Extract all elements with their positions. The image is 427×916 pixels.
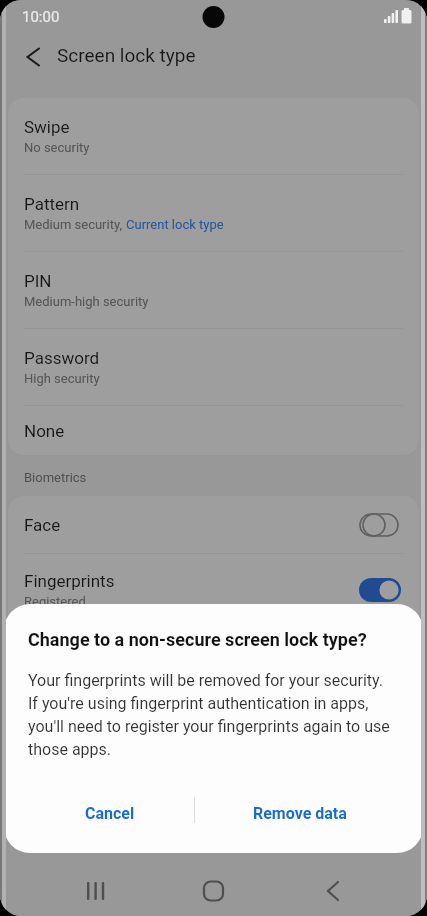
staticText: Fingerprints <box>24 571 115 591</box>
button[interactable]: Password <box>8 329 419 405</box>
staticText: Your fingerprints will be removed for yo… <box>28 671 390 759</box>
staticText: Change to a non-secure screen lock type? <box>28 629 367 650</box>
staticText: Screen lock type <box>57 44 196 66</box>
staticText: None <box>24 421 65 441</box>
staticText: PIN <box>24 271 52 291</box>
button[interactable] <box>185 862 241 912</box>
button[interactable]: Remove data <box>230 791 370 835</box>
button[interactable]: Cancel <box>52 791 168 835</box>
staticText: No security <box>24 140 90 155</box>
button[interactable] <box>68 862 124 912</box>
button[interactable]: Face <box>8 496 419 553</box>
staticText: Face <box>24 515 61 535</box>
staticText: Biometrics <box>24 470 87 485</box>
staticText: 10:00 <box>22 8 60 26</box>
button[interactable] <box>14 37 54 77</box>
staticText: Pattern <box>24 194 80 214</box>
staticText: Remove data <box>253 804 347 823</box>
staticText: High security <box>24 371 100 386</box>
button[interactable]: Swipe <box>8 98 419 174</box>
staticText: Medium security, <box>24 217 126 232</box>
button[interactable]: PIN <box>8 252 419 328</box>
staticText: Cancel <box>85 804 135 823</box>
button[interactable]: None <box>8 406 419 455</box>
button[interactable]: Pattern <box>8 175 419 251</box>
staticText: Medium-high security <box>24 294 149 309</box>
staticText: Password <box>24 348 100 368</box>
button[interactable] <box>305 862 361 912</box>
staticText: Current lock type <box>126 217 224 232</box>
staticText: Registered <box>24 594 86 609</box>
staticText: Swipe <box>24 117 70 137</box>
button[interactable]: Fingerprints <box>8 554 419 626</box>
